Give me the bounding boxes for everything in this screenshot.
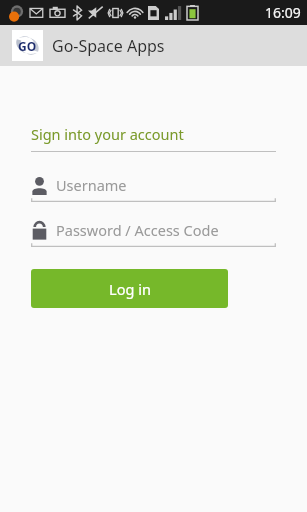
staticText: GO [18, 38, 37, 54]
button[interactable]: Go-Space Apps home [12, 30, 165, 61]
staticText: Sign into your account [31, 124, 184, 144]
staticText: Log in [109, 279, 151, 299]
staticText: Password / Access Code [56, 220, 219, 240]
staticText: 16:09 [265, 3, 301, 22]
button[interactable]: Log in [31, 269, 228, 308]
staticText: Go-Space Apps [52, 35, 165, 57]
button[interactable]: Username [31, 172, 276, 204]
staticText: Username [56, 175, 127, 195]
button[interactable]: Password / Access Code [31, 217, 276, 249]
